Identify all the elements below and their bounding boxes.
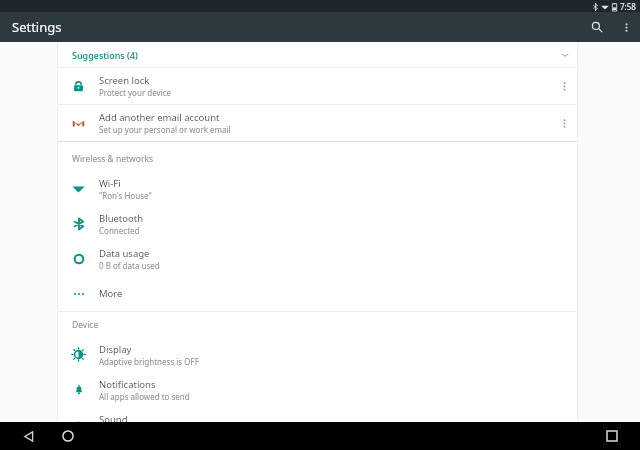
staticText: Device [72, 319, 99, 331]
staticText: Adaptive brightness is OFF [99, 356, 199, 367]
staticText: Connected [99, 225, 140, 236]
staticText: Bluetooth [99, 212, 144, 225]
staticText: Settings [12, 18, 62, 36]
staticText: Data usage [99, 247, 150, 260]
button[interactable]: Display [58, 337, 577, 372]
button[interactable]: Suggestion options [551, 68, 577, 104]
button[interactable]: Wi-Fi [58, 171, 577, 206]
staticText: More [99, 287, 123, 300]
button[interactable]: Bluetooth [58, 206, 577, 241]
button[interactable]: Notifications [58, 372, 577, 407]
button[interactable]: Sound [58, 407, 577, 442]
staticText: 7:58 [620, 1, 636, 12]
button[interactable]: Search [582, 12, 612, 42]
staticText: "Ron's House" [99, 190, 152, 201]
button[interactable]: More [58, 276, 577, 311]
staticText: Add another email account [99, 111, 220, 124]
staticText: Protect your device [99, 87, 172, 98]
staticText: 0 B of data used [99, 260, 160, 271]
staticText: Set up your personal or work email [99, 124, 231, 135]
staticText: Display [99, 343, 132, 356]
button[interactable]: More options [612, 13, 640, 41]
staticText: Notifications [99, 378, 156, 391]
button[interactable]: Suggestion options [551, 105, 577, 141]
staticText: Wireless & networks [72, 153, 154, 165]
button[interactable]: Collapse suggestions [553, 43, 577, 67]
button[interactable]: Suggestions (4) [58, 42, 577, 67]
staticText: Screen lock [99, 74, 150, 87]
staticText: Suggestions (4) [72, 49, 138, 61]
button[interactable]: Data usage [58, 241, 577, 276]
staticText: All apps allowed to send [99, 391, 190, 402]
button[interactable]: Add another email account [58, 105, 577, 141]
button[interactable]: Home [54, 422, 82, 450]
staticText: Sound [99, 413, 128, 426]
button[interactable]: Back [14, 422, 42, 450]
button[interactable]: Screen lock [58, 68, 577, 104]
staticText: Wi-Fi [99, 177, 121, 190]
button[interactable]: Recent apps [598, 422, 626, 450]
